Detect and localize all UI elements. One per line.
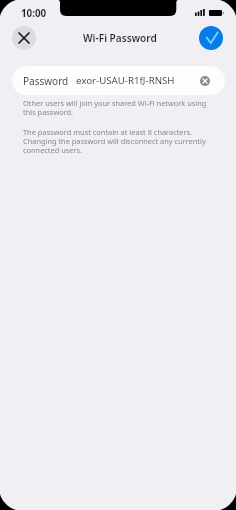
staticText: Wi-Fi Password: [83, 31, 157, 45]
button[interactable]: Close: [12, 26, 36, 50]
staticText: 10:00: [21, 7, 47, 20]
staticText: exor-USAU-R1fJ-RNSH: [76, 74, 175, 87]
button[interactable]: Clear text: [200, 76, 210, 86]
button[interactable]: Password: [12, 66, 225, 95]
button[interactable]: Confirm: [199, 26, 223, 50]
staticText: Password: [23, 74, 69, 88]
staticText: Other users will join your shared Wi-Fi …: [23, 98, 209, 117]
staticText: The password must contain at least 8 cha…: [23, 127, 209, 155]
